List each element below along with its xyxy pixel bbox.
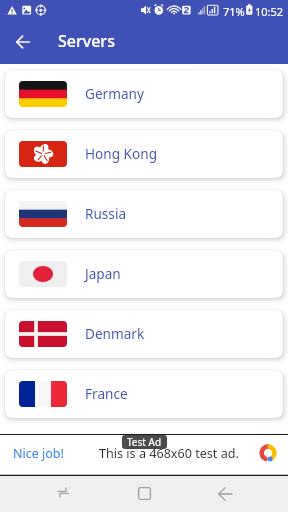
staticText: 10:52 bbox=[255, 4, 284, 19]
button[interactable]: Back bbox=[9, 28, 37, 56]
staticText: Test Ad bbox=[127, 435, 162, 449]
staticText: France bbox=[85, 384, 128, 403]
button[interactable]: Japan bbox=[5, 250, 283, 298]
button[interactable]: Home bbox=[124, 475, 164, 511]
button[interactable]: Germany bbox=[5, 70, 283, 118]
button[interactable]: Nice job! bbox=[0, 434, 288, 476]
button[interactable]: Hong Kong bbox=[5, 130, 283, 178]
staticText: Germany bbox=[85, 84, 144, 103]
button[interactable]: Russia bbox=[5, 190, 283, 238]
button[interactable]: France bbox=[5, 370, 283, 418]
staticText: Hong Kong bbox=[85, 144, 157, 163]
button[interactable]: Back bbox=[205, 476, 245, 512]
staticText: This is a 468x60 test ad. bbox=[99, 445, 239, 462]
staticText: Japan bbox=[85, 264, 121, 283]
staticText: Nice job! bbox=[13, 445, 64, 462]
staticText: Denmark bbox=[85, 324, 145, 343]
button[interactable]: Denmark bbox=[5, 310, 283, 358]
staticText: 71% bbox=[223, 4, 245, 19]
staticText: Russia bbox=[85, 204, 127, 223]
button[interactable]: Recent apps bbox=[43, 474, 83, 510]
staticText: Servers bbox=[58, 30, 115, 52]
